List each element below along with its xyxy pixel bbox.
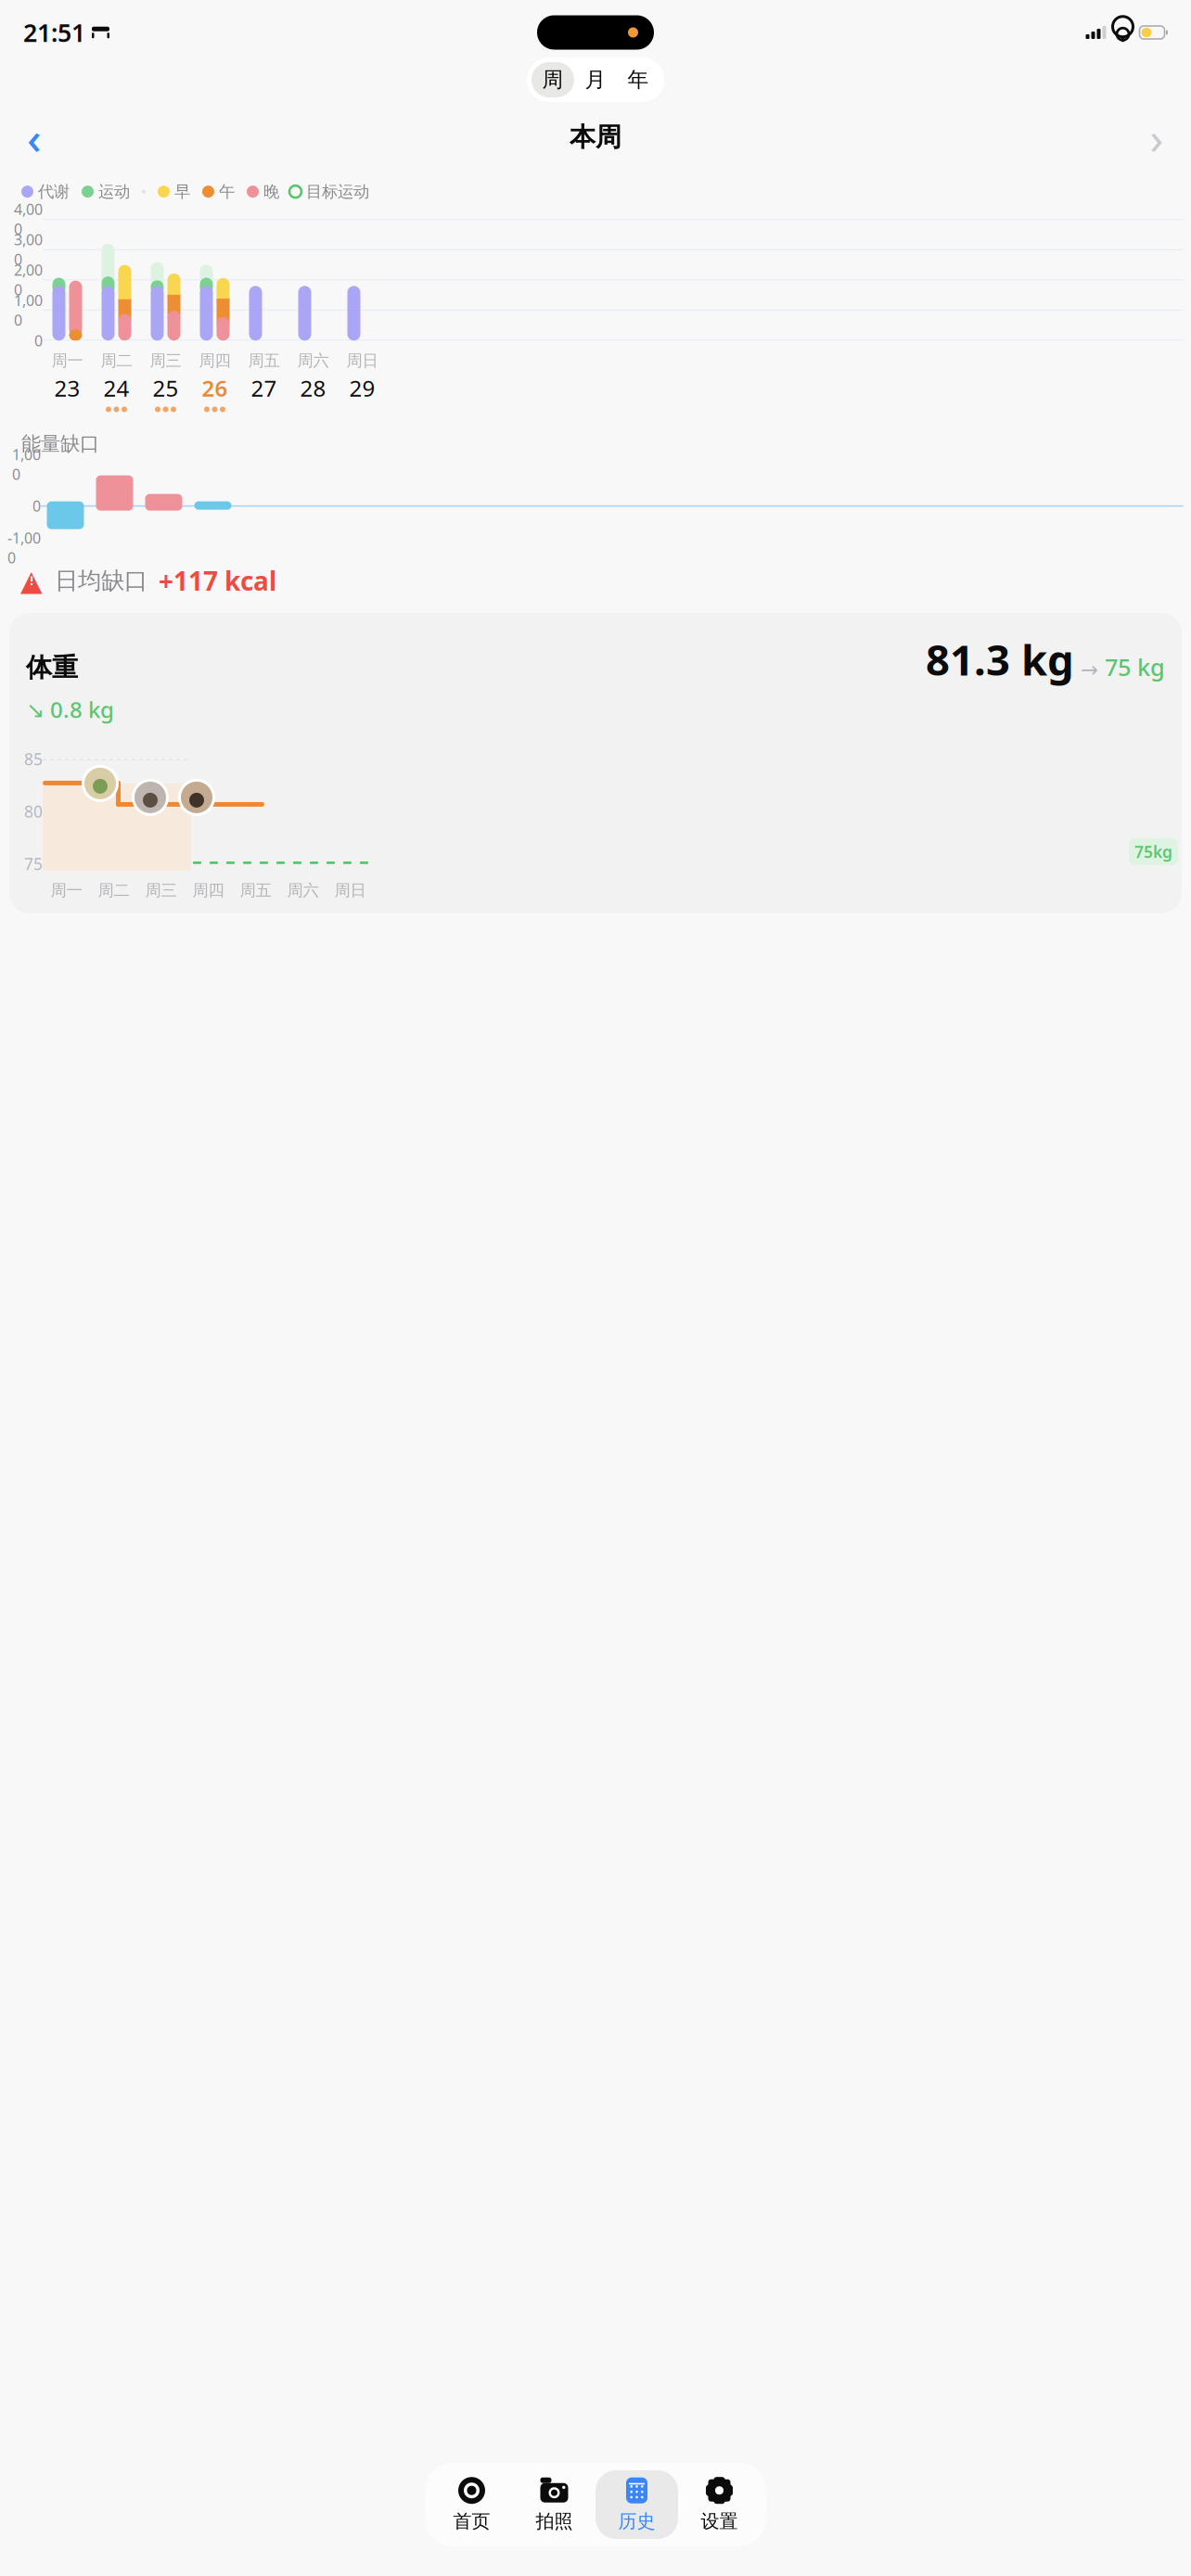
staticText: ›	[1150, 108, 1164, 167]
staticText: 75kg	[1134, 841, 1172, 862]
staticText: 历史	[618, 2510, 655, 2533]
staticText: 本周	[570, 121, 621, 153]
button[interactable]: 年	[617, 62, 660, 97]
staticText: 周四	[192, 881, 224, 900]
button[interactable]: 首页	[430, 2470, 513, 2539]
staticText: 拍照	[536, 2510, 573, 2533]
staticText: 能量缺口	[21, 432, 99, 456]
button[interactable]: 拍照	[513, 2470, 595, 2539]
staticText: 目标运动	[306, 182, 369, 201]
staticText: 23	[54, 373, 80, 403]
button[interactable]: 历史	[595, 2470, 678, 2539]
staticText: 月	[585, 67, 606, 93]
staticText: 75 kg	[1105, 651, 1165, 682]
staticText: ▲	[20, 565, 43, 597]
staticText: →	[1081, 658, 1098, 682]
staticText: 3,000	[14, 230, 43, 269]
staticText: 周日	[334, 881, 366, 900]
staticText: 周四	[199, 351, 231, 371]
staticText: ‹	[27, 108, 42, 167]
staticText: ↘ 0.8 kg	[26, 695, 114, 724]
staticText: 年	[628, 67, 649, 93]
staticText: 运动	[98, 182, 130, 201]
staticText: -1,000	[7, 528, 41, 567]
button[interactable]: 周	[531, 62, 574, 97]
staticText: 21:51	[23, 16, 85, 49]
staticText: 日均缺口	[55, 566, 147, 595]
staticText: 25	[153, 373, 179, 403]
staticText: 24	[103, 373, 129, 403]
staticText: 周二	[101, 351, 132, 371]
staticText: 28	[300, 373, 326, 403]
staticText: 首页	[453, 2510, 490, 2533]
button[interactable]: 上一周	[11, 117, 58, 158]
staticText: 周五	[248, 351, 280, 371]
staticText: 周日	[346, 351, 378, 371]
staticText: 周三	[145, 881, 177, 900]
staticText: 晚	[263, 182, 279, 201]
staticText: 81.3 kg	[926, 631, 1074, 687]
staticText: 体重	[26, 652, 78, 683]
staticText: 午	[219, 182, 235, 201]
staticText: 1,000	[14, 291, 43, 330]
staticText: 周二	[98, 881, 129, 900]
staticText: 周一	[51, 881, 82, 900]
staticText: 周三	[150, 351, 181, 371]
staticText: 75	[24, 853, 43, 874]
staticText: +117 kcal	[159, 564, 276, 598]
button[interactable]: 月	[574, 62, 617, 97]
staticText: 27	[251, 373, 277, 403]
staticText: 早	[174, 182, 190, 201]
staticText: 周五	[240, 881, 271, 900]
staticText: 周一	[51, 351, 83, 371]
staticText: 1,000	[12, 445, 41, 484]
staticText: 29	[349, 373, 375, 403]
staticText: 0	[34, 331, 43, 350]
button[interactable]: 下一周	[1133, 117, 1180, 158]
staticText: 代谢	[38, 182, 70, 201]
staticText: 85	[24, 748, 43, 770]
staticText: 设置	[701, 2510, 738, 2533]
staticText: 周六	[287, 881, 319, 900]
staticText: 26	[202, 373, 228, 403]
staticText: 0	[32, 496, 41, 516]
staticText: 80	[24, 801, 43, 822]
staticText: 周	[542, 67, 563, 93]
staticText: 2,000	[14, 260, 43, 300]
staticText: 周六	[297, 351, 329, 371]
staticText: 4,000	[14, 199, 43, 239]
button[interactable]: 设置	[678, 2470, 761, 2539]
